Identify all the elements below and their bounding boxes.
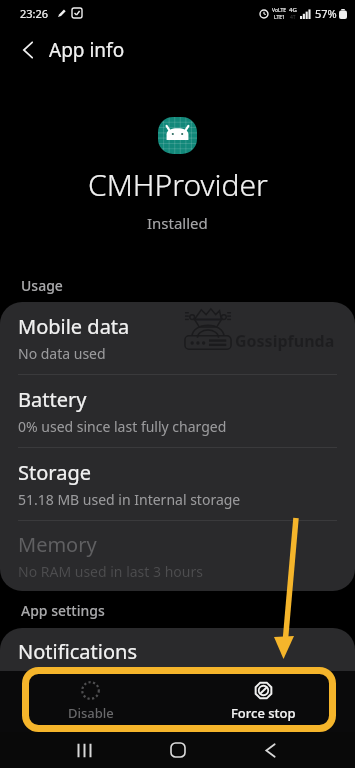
button[interactable]: Battery — [0, 375, 355, 447]
staticText: Storage — [18, 459, 91, 486]
button[interactable]: Recents — [38, 732, 131, 768]
staticText: Installed — [147, 213, 208, 233]
staticText: Mobile data — [18, 313, 130, 340]
staticText: 4T — [290, 14, 296, 21]
staticText: No data used — [18, 344, 106, 363]
staticText: 0% used since last fully charged — [18, 417, 227, 436]
staticText: VoLTE — [272, 7, 287, 14]
staticText: 51.18 MB used in Internal storage — [18, 490, 241, 509]
button[interactable]: Storage — [0, 448, 355, 520]
button[interactable]: Force stop — [181, 671, 345, 731]
button[interactable]: Notifications — [0, 628, 355, 671]
staticText: App info — [49, 37, 125, 63]
button[interactable]: Back — [224, 732, 317, 768]
staticText: Force stop — [231, 704, 296, 722]
staticText: Gossipfunda — [235, 330, 335, 352]
staticText: LTE1 — [274, 14, 285, 21]
staticText: 4G — [289, 6, 297, 14]
staticText: CMHProvider — [88, 164, 268, 205]
staticText: Disable — [68, 704, 114, 722]
button[interactable]: Memory — [0, 521, 355, 591]
staticText: No RAM used in last 3 hours — [18, 562, 203, 581]
button[interactable]: Mobile data — [0, 302, 355, 374]
button[interactable]: Disable — [0, 671, 181, 731]
staticText: 23:26 — [20, 6, 49, 21]
staticText: 57% — [315, 6, 337, 21]
staticText: App settings — [21, 601, 105, 620]
staticText: Memory — [18, 531, 97, 558]
button[interactable]: Navigate up — [4, 26, 52, 74]
staticText: Battery — [18, 386, 87, 413]
staticText: Usage — [21, 276, 63, 295]
staticText: Notifications — [18, 638, 137, 665]
button[interactable]: Home — [131, 732, 224, 768]
